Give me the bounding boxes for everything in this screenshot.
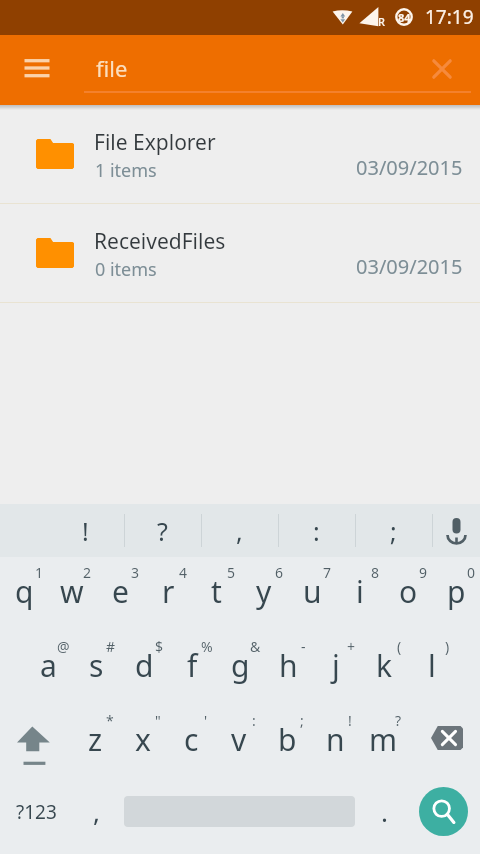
staticText: $ xyxy=(155,637,164,656)
staticText: 0 xyxy=(467,563,476,582)
staticText: k xyxy=(376,645,393,686)
staticText: 17:19 xyxy=(425,4,474,30)
button[interactable]: v xyxy=(215,705,263,779)
button[interactable]: p xyxy=(432,557,480,631)
staticText: ( xyxy=(397,637,402,656)
staticText: w xyxy=(60,571,84,612)
button[interactable]: ? xyxy=(124,504,201,557)
button[interactable]: , xyxy=(72,779,120,854)
button[interactable]: ! xyxy=(47,504,124,557)
button[interactable]: s xyxy=(72,631,120,705)
button[interactable]: . xyxy=(358,779,416,854)
staticText: + xyxy=(347,637,356,656)
button[interactable]: l xyxy=(408,631,456,705)
staticText: ) xyxy=(445,637,450,656)
staticText: c xyxy=(184,719,199,760)
staticText: q xyxy=(15,571,34,612)
button[interactable]: e xyxy=(96,557,144,631)
button[interactable]: ?123 xyxy=(0,779,72,854)
staticText: i xyxy=(356,571,364,612)
button[interactable]: w xyxy=(48,557,96,631)
staticText: ?123 xyxy=(16,799,57,825)
button[interactable]: Shift xyxy=(0,705,71,779)
staticText: file xyxy=(96,53,128,83)
staticText: ? xyxy=(395,711,402,730)
staticText: ? xyxy=(157,514,168,548)
button[interactable]: m xyxy=(359,705,407,779)
button[interactable]: , xyxy=(201,504,278,557)
staticText: g xyxy=(231,645,250,686)
staticText: 1 xyxy=(35,563,44,582)
staticText: l xyxy=(428,645,436,686)
staticText: 6 xyxy=(275,563,284,582)
button[interactable]: c xyxy=(167,705,215,779)
staticText: - xyxy=(301,637,306,656)
button[interactable]: r xyxy=(144,557,192,631)
button[interactable]: k xyxy=(360,631,408,705)
staticText: a xyxy=(40,645,57,686)
button[interactable]: f xyxy=(168,631,216,705)
staticText: 7 xyxy=(323,563,332,582)
staticText: 9 xyxy=(419,563,428,582)
button[interactable]: n xyxy=(311,705,359,779)
staticText: u xyxy=(303,571,322,612)
staticText: @ xyxy=(57,637,70,656)
button[interactable]: Search xyxy=(419,787,468,836)
button[interactable]: h xyxy=(264,631,312,705)
button[interactable]: a xyxy=(24,631,72,705)
button[interactable]: d xyxy=(120,631,168,705)
button[interactable]: z xyxy=(71,705,119,779)
button[interactable]: File Explorer xyxy=(0,105,480,203)
button[interactable]: g xyxy=(216,631,264,705)
staticText: y xyxy=(256,571,272,612)
staticText: " xyxy=(155,711,161,730)
staticText: j xyxy=(332,645,340,686)
staticText: h xyxy=(279,645,298,686)
button[interactable]: o xyxy=(384,557,432,631)
button[interactable]: y xyxy=(240,557,288,631)
staticText: 03/09/2015 xyxy=(356,253,463,280)
staticText: d xyxy=(135,645,154,686)
staticText: 4 xyxy=(179,563,188,582)
button[interactable]: i xyxy=(336,557,384,631)
staticText: z xyxy=(88,719,103,760)
staticText: 1 items xyxy=(95,158,157,183)
staticText: n xyxy=(326,719,345,760)
staticText: : xyxy=(252,711,256,730)
button[interactable]: x xyxy=(119,705,167,779)
staticText: 8 xyxy=(371,563,380,582)
staticText: 03/09/2015 xyxy=(356,154,463,181)
button[interactable]: : xyxy=(278,504,355,557)
button[interactable]: t xyxy=(192,557,240,631)
staticText: R xyxy=(378,14,385,29)
staticText: ReceivedFiles xyxy=(94,227,226,256)
staticText: 2 xyxy=(83,563,92,582)
staticText: 5 xyxy=(227,563,236,582)
button[interactable]: Open navigation drawer xyxy=(0,35,74,105)
button[interactable]: u xyxy=(288,557,336,631)
staticText: r xyxy=(162,571,175,612)
button[interactable]: q xyxy=(0,557,48,631)
button[interactable]: b xyxy=(263,705,311,779)
staticText: ; xyxy=(390,514,397,548)
staticText: 84 xyxy=(398,10,411,25)
staticText: v xyxy=(231,719,247,760)
button[interactable]: j xyxy=(312,631,360,705)
staticText: ! xyxy=(348,711,352,730)
button[interactable]: Backspace xyxy=(407,705,480,779)
button[interactable]: Clear search query xyxy=(406,35,480,105)
staticText: b xyxy=(278,719,297,760)
staticText: ; xyxy=(300,711,304,730)
button[interactable] xyxy=(120,779,358,854)
staticText: o xyxy=(399,571,418,612)
button[interactable]: ReceivedFiles xyxy=(0,204,480,302)
staticText: . xyxy=(381,794,388,829)
button[interactable]: ; xyxy=(355,504,432,557)
staticText: s xyxy=(89,645,104,686)
staticText: 3 xyxy=(131,563,140,582)
staticText: m xyxy=(369,719,398,760)
staticText: ! xyxy=(82,514,89,548)
staticText: , xyxy=(236,514,243,548)
staticText: 0 items xyxy=(95,257,157,282)
button[interactable]: Voice input xyxy=(432,504,480,557)
